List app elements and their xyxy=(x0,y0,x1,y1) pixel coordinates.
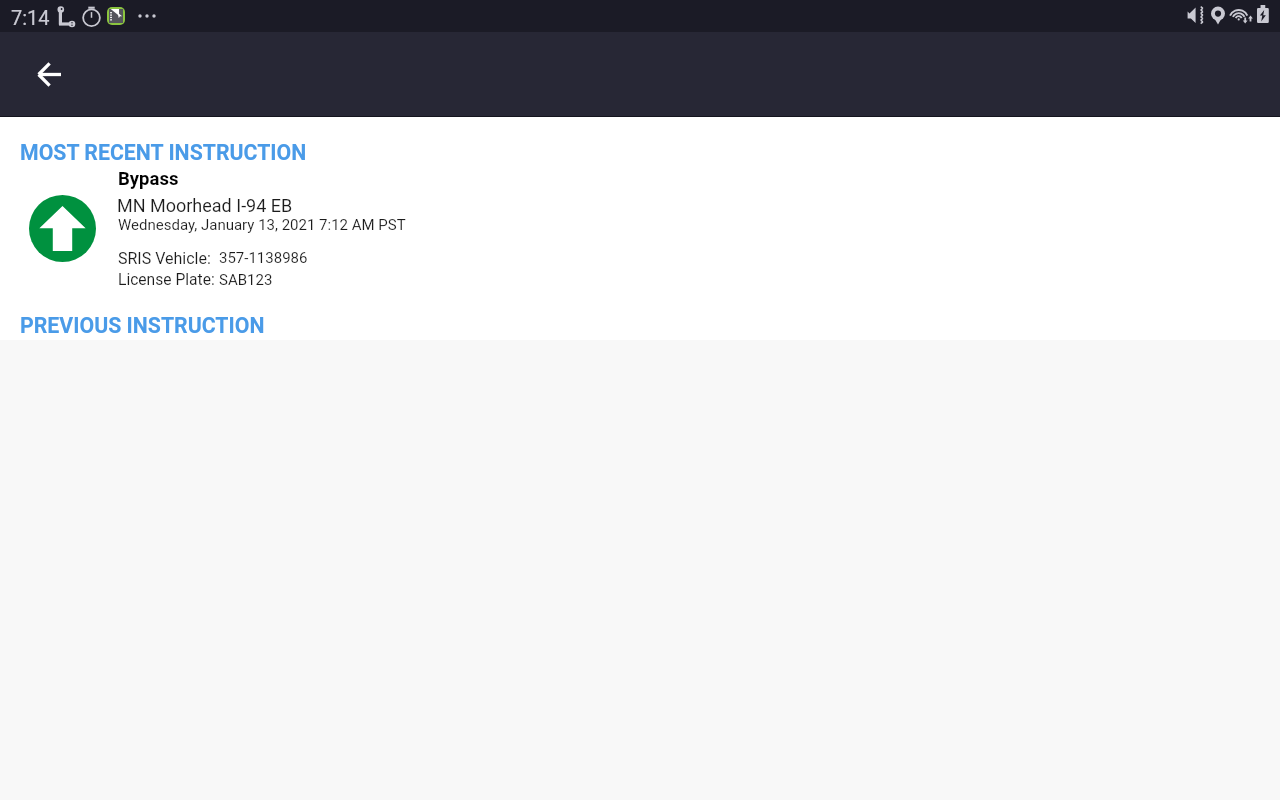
staticText: PREVIOUS INSTRUCTION xyxy=(20,313,265,338)
other: Battery charging xyxy=(1257,4,1270,25)
staticText: 357-1138986 xyxy=(219,249,308,267)
staticText: SRIS Vehicle: xyxy=(118,249,211,268)
staticText: Wednesday, January 13, 2021 7:12 AM PST xyxy=(118,216,406,234)
staticText: SAB123 xyxy=(219,271,273,289)
other: Wi-Fi xyxy=(1229,5,1253,25)
button[interactable]: Navigate up xyxy=(25,50,73,98)
staticText: Bypass xyxy=(118,168,179,190)
other: Running app xyxy=(107,7,125,25)
staticText: License Plate: xyxy=(118,271,215,289)
other: Location in use xyxy=(1211,6,1225,25)
other: Timer xyxy=(82,6,101,27)
other: Ringer muted, vibrate xyxy=(1187,6,1206,24)
button[interactable]: Bypass instruction xyxy=(29,195,96,262)
other: Device connected xyxy=(57,6,76,27)
staticText: MN Moorhead I-94 EB xyxy=(117,195,293,216)
staticText: MOST RECENT INSTRUCTION xyxy=(20,140,307,165)
staticText: 7:14 xyxy=(11,6,50,29)
